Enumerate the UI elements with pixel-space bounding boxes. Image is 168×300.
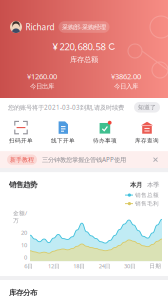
staticText: 库存查询 [135,137,159,144]
staticText: 0 [24,253,27,261]
button[interactable]: 本月 [130,181,142,189]
staticText: 今日出库 [30,82,54,90]
staticText: 采购部-采购经理 [62,23,106,31]
staticText: 18日 [73,262,85,270]
staticText: 6日 [24,262,33,270]
staticText: 新手教程 [10,156,34,163]
staticText: 扫码开单 [9,137,33,144]
staticText: ¥3862.00 [111,71,141,81]
button[interactable]: 采购部-采购经理 [54,21,109,33]
staticText: 10 [21,241,27,249]
staticText: 库存分布 [9,288,37,297]
staticText: 知道了 [138,104,156,111]
staticText: Richard [25,21,54,33]
button[interactable]: Richard [10,21,54,33]
staticText: 线下开单 [51,137,75,144]
staticText: 销售总额 [135,192,159,199]
staticText: 销售趋势 [9,180,37,189]
staticText: 待办事项 [93,137,117,144]
staticText: 12日 [48,262,60,270]
staticText: 三分钟教您掌握企管钱APP使用 [42,155,126,164]
staticText: ¥ 220,680.58 [52,40,105,53]
button[interactable]: 扫码开单 [0,118,42,147]
staticText: 本季 [147,181,159,189]
staticText: 日期 [149,262,161,270]
staticText: ¥1260.00 [27,71,57,81]
staticText: 30日 [124,262,136,270]
button[interactable]: 刷新 [108,43,116,50]
staticText: 库存总额 [70,55,98,64]
staticText: 销售毛利 [135,200,159,207]
button[interactable]: 线下开单 [42,118,84,147]
button[interactable]: 库存查询 [126,118,168,147]
staticText: 今日入库 [114,82,138,90]
button[interactable]: 关闭 [150,154,161,165]
button[interactable]: 待办事项 [84,118,126,147]
staticText: 本月 [130,181,142,189]
staticText: 20 [21,229,27,236]
staticText: 金额/万 [13,209,27,224]
button[interactable]: 知道了 [134,102,160,113]
staticText: 您的账号将于2021-03-03到期,请及时续费 [8,103,124,111]
staticText: 24日 [99,262,111,270]
button[interactable]: 本季 [142,181,159,189]
